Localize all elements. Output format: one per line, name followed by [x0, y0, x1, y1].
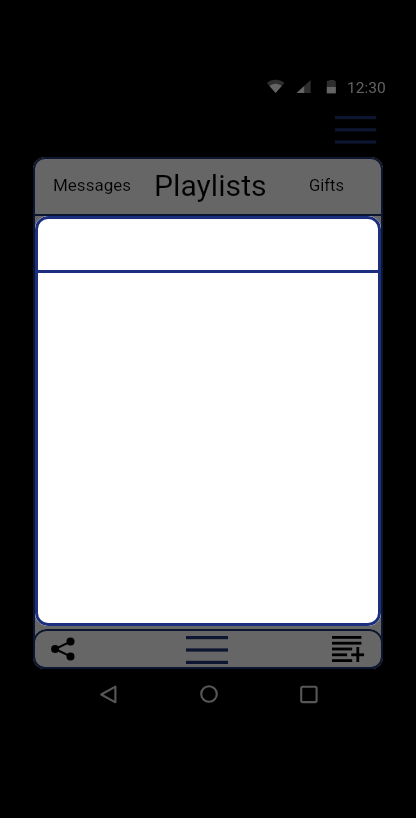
button[interactable]: Home [184, 677, 234, 711]
button[interactable]: Share [41, 632, 85, 666]
button[interactable]: Back [84, 677, 134, 711]
button[interactable]: Menu [181, 633, 232, 667]
staticText: Messages [53, 175, 131, 195]
button[interactable]: Playlists [152, 157, 268, 214]
button[interactable] [35, 216, 381, 626]
button[interactable]: Messages [50, 157, 134, 213]
staticText: Gifts [309, 176, 344, 195]
button[interactable]: Add to playlist [326, 632, 370, 666]
button[interactable]: Gifts [284, 157, 368, 214]
button[interactable]: Open navigation menu [326, 109, 384, 151]
staticText: 12:30 [347, 79, 386, 97]
button[interactable]: Recent apps [284, 677, 334, 711]
staticText: Playlists [154, 168, 267, 203]
